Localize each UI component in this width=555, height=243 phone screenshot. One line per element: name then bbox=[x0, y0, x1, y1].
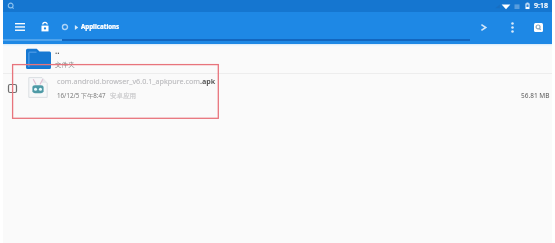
button[interactable]: Select item bbox=[3, 79, 21, 97]
button[interactable]: Select item bbox=[3, 74, 552, 111]
button[interactable]: .. bbox=[3, 48, 552, 73]
button[interactable]: Storage permission bbox=[37, 17, 53, 37]
button[interactable]: Search bbox=[531, 17, 546, 37]
staticText: 9:18 bbox=[534, 1, 548, 11]
staticText: .. bbox=[55, 45, 60, 56]
button[interactable]: Root storage bbox=[61, 19, 68, 35]
button[interactable]: More options bbox=[504, 17, 520, 37]
button[interactable]: Forward bbox=[475, 17, 491, 37]
staticText: 56.81 MB bbox=[521, 91, 550, 100]
staticText: 安卓应用 bbox=[110, 92, 136, 99]
staticText: 文件夹 bbox=[55, 61, 75, 69]
button[interactable]: Open navigation drawer bbox=[11, 17, 28, 37]
staticText: .apk bbox=[200, 76, 216, 86]
staticText: Applications bbox=[81, 22, 120, 30]
staticText: 16/12/5 下午8:47 bbox=[57, 91, 106, 99]
staticText: com.android.browser_v6.0.1_apkpure.com bbox=[57, 76, 200, 86]
button[interactable]: Applications bbox=[81, 23, 120, 31]
